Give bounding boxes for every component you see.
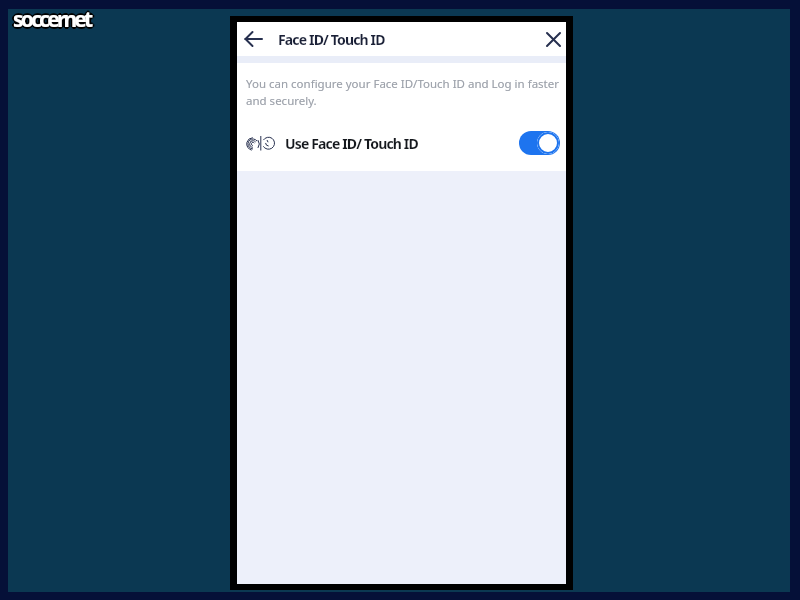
staticText: soccernet [15,5,93,34]
staticText: soccernet [11,5,89,34]
staticText: soccernet [12,6,90,35]
staticText: soccernet [13,5,91,34]
staticText: soccernet [14,6,92,35]
button[interactable] [540,22,566,56]
button[interactable] [237,22,271,56]
staticText: soccernet [13,7,91,36]
staticText: You can configure your Face ID/Touch ID … [246,76,559,108]
staticText: Use Face ID/ Touch ID [285,134,418,153]
button[interactable]: Use Face ID/ Touch ID [237,131,566,155]
button[interactable] [519,131,560,155]
staticText: soccernet [12,4,90,33]
staticText: Face ID/ Touch ID [278,30,385,49]
staticText: soccernet [14,4,92,33]
staticText: soccernet [13,3,91,32]
